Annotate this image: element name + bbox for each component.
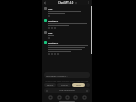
button[interactable]: Library (65, 95, 69, 99)
button[interactable]: Chats (48, 95, 52, 99)
staticText: Message ChatGPT… (46, 74, 69, 77)
staticText: Search (47, 84, 54, 87)
staticText: You (48, 7, 53, 10)
button[interactable]: Add attachment (44, 88, 90, 93)
staticText: ChatGPT (48, 19, 59, 22)
staticText: ChatGPT (48, 41, 59, 44)
button[interactable]: Search (44, 83, 56, 87)
staticText: Canvas (61, 84, 68, 87)
button[interactable]: Tools (72, 83, 85, 87)
staticText: Tools (76, 84, 81, 87)
button[interactable]: Voice (73, 95, 77, 99)
staticText: Add attachment (59, 89, 75, 92)
button[interactable]: Back (43, 1, 47, 5)
staticText: ChatGPT can make mistakes. Check importa… (44, 80, 90, 82)
staticText: You (48, 31, 53, 34)
button[interactable]: More (86, 83, 90, 87)
button[interactable]: Explore (57, 95, 61, 99)
button[interactable]: Message ChatGPT… (44, 72, 90, 78)
button[interactable]: Canvas (57, 83, 71, 87)
button[interactable]: ChatGPT 4.0 (58, 1, 77, 5)
staticText: ChatGPT 4.0 (58, 1, 74, 5)
button[interactable]: Menu (87, 1, 90, 4)
button[interactable]: Profile (82, 95, 86, 99)
